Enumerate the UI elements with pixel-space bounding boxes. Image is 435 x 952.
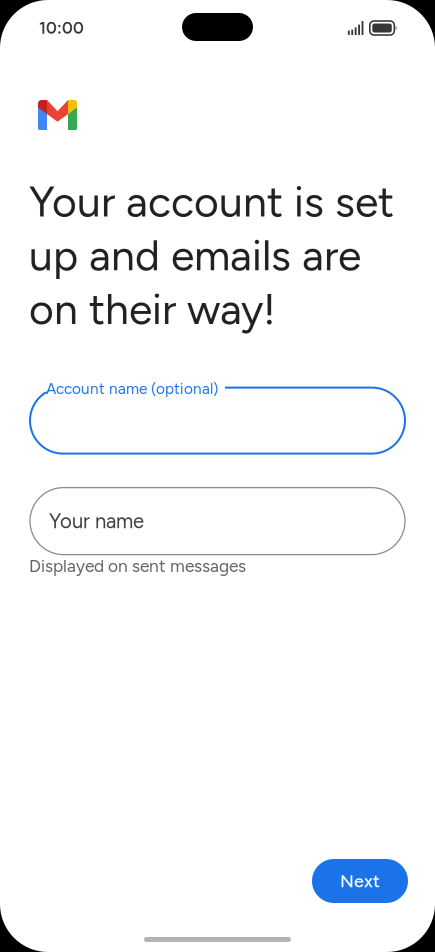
staticText: Your name: [49, 509, 144, 533]
staticText: Your account is set up and emails are on…: [29, 176, 394, 335]
staticText: Account name (optional): [46, 379, 218, 398]
staticText: 10:00: [39, 18, 84, 38]
button[interactable]: Next: [312, 859, 408, 903]
staticText: Next: [340, 870, 380, 892]
staticText: Displayed on sent messages: [29, 556, 246, 576]
